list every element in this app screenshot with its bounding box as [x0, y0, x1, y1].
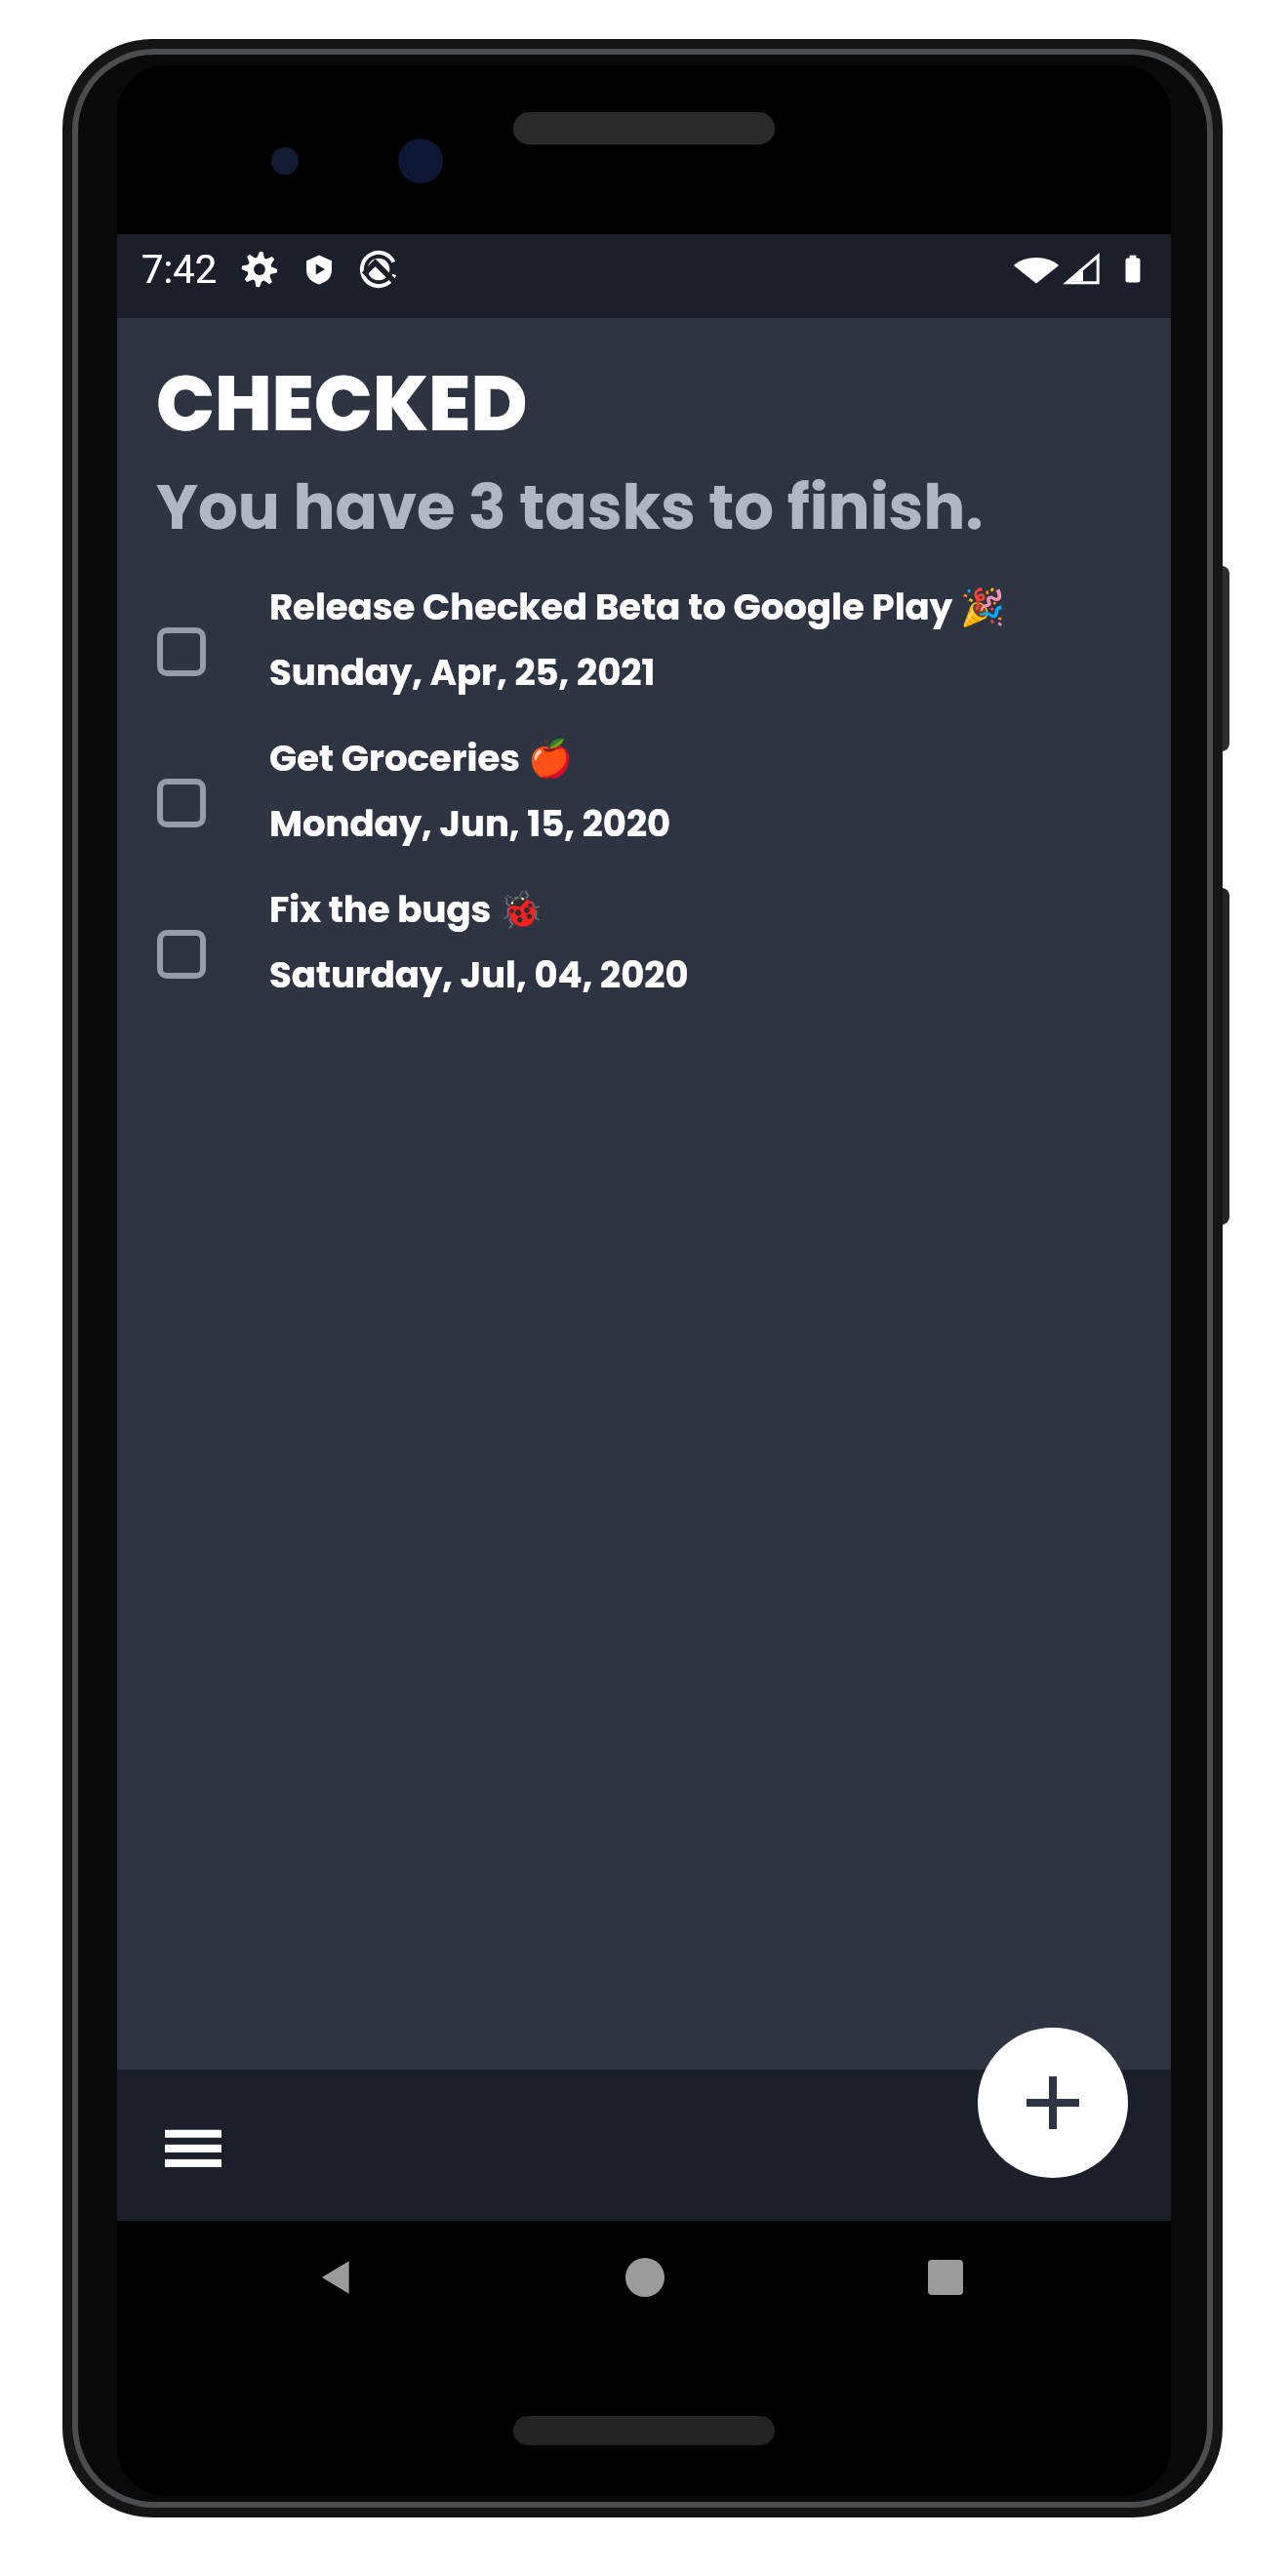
button[interactable]: Toggle task [157, 779, 206, 827]
staticText: Fix the bugs 🐞 [269, 884, 544, 935]
button[interactable]: Toggle task [157, 930, 206, 979]
staticText: Release Checked Beta to Google Play 🎉 [269, 582, 1005, 632]
staticText: Saturday, Jul, 04, 2020 [269, 949, 689, 1000]
button[interactable]: Home [606, 2238, 684, 2316]
button[interactable]: Menu [152, 2105, 234, 2187]
button[interactable]: Toggle task [117, 727, 1171, 878]
button[interactable]: Add task [978, 2028, 1128, 2178]
staticText: You have 3 tasks to finish. [156, 463, 984, 551]
staticText: Get Groceries 🍎 [269, 733, 573, 784]
button[interactable]: Toggle task [157, 627, 206, 676]
button[interactable]: Back [298, 2238, 376, 2316]
button[interactable]: Toggle task [117, 576, 1171, 727]
button[interactable]: Recents [906, 2238, 985, 2316]
button[interactable]: Toggle task [117, 878, 1171, 1029]
staticText: Monday, Jun, 15, 2020 [269, 798, 671, 849]
staticText: 7:42 [141, 247, 218, 293]
staticText: Sunday, Apr, 25, 2021 [269, 647, 656, 698]
staticText: CHECKED [156, 349, 528, 458]
